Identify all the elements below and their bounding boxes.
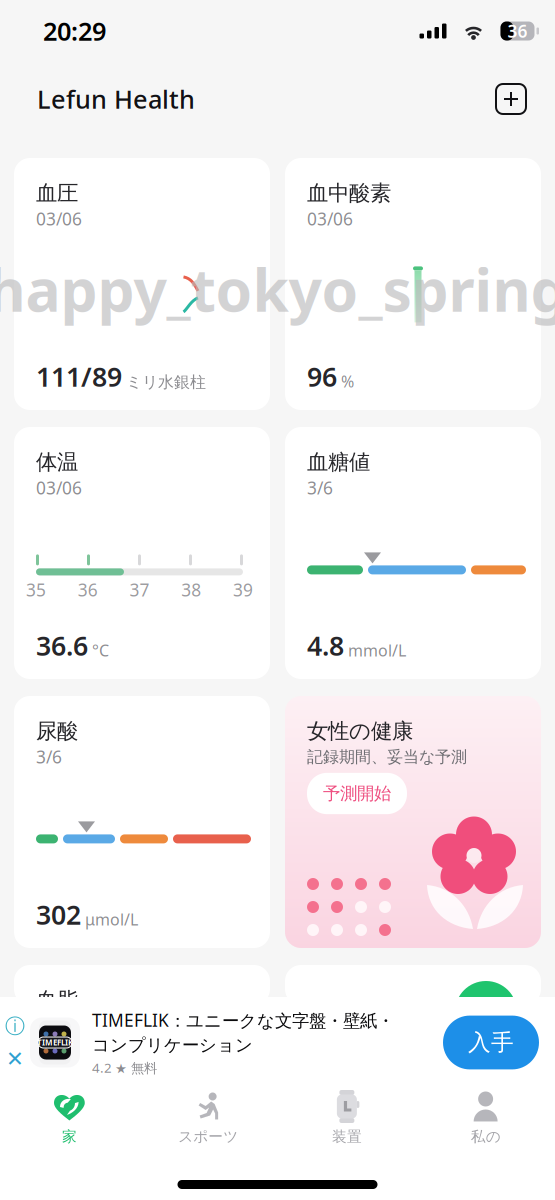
staticText: 4.8: [307, 628, 344, 663]
staticText: 36: [78, 578, 98, 601]
button[interactable]: 装置: [277, 1090, 416, 1157]
staticText: 03/06: [36, 207, 82, 230]
button[interactable]: 血中酸素: [285, 158, 541, 410]
staticText: ✕: [6, 1047, 24, 1071]
staticText: 36.6: [36, 628, 88, 663]
staticText: 38: [181, 578, 201, 601]
staticText: 装置: [332, 1127, 362, 1145]
staticText: 血圧: [36, 180, 78, 206]
staticText: 36: [507, 19, 527, 42]
staticText: ⓘ: [5, 1014, 25, 1039]
staticText: Lefun Health: [37, 82, 195, 116]
staticText: 家: [62, 1127, 77, 1145]
staticText: 03/06: [307, 207, 353, 230]
button[interactable]: スポーツ: [139, 1090, 278, 1157]
staticText: °C: [92, 640, 109, 661]
staticText: 111/89: [36, 359, 122, 394]
staticText: μmol/L: [85, 909, 138, 930]
button[interactable]: 入手: [443, 1016, 539, 1069]
staticText: 体温: [36, 449, 78, 475]
staticText: TIMEFLIK: [37, 1037, 73, 1048]
staticText: 35: [26, 578, 46, 601]
button[interactable]: 追加: [489, 77, 533, 121]
staticText: 尿酸: [36, 718, 78, 744]
staticText: 血脂: [36, 987, 78, 1013]
staticText: 96: [307, 359, 337, 394]
staticText: %: [341, 371, 354, 392]
staticText: 03/06: [36, 476, 82, 499]
staticText: 302: [36, 897, 81, 932]
staticText: 血糖値: [307, 449, 370, 475]
button[interactable]: 家: [0, 1090, 139, 1157]
staticText: 39: [233, 578, 253, 601]
staticText: 女性の健康: [307, 718, 413, 744]
staticText: TIMEFLIK：ユニークな文字盤・壁紙・: [92, 1008, 394, 1031]
staticText: 予測開始: [323, 783, 391, 804]
staticText: mmol/L: [348, 640, 406, 661]
staticText: happy_tokyo_spring: [0, 250, 555, 328]
staticText: 37: [129, 578, 149, 601]
staticText: 私の: [471, 1127, 501, 1145]
button[interactable]: 私の: [416, 1090, 555, 1157]
staticText: 3/6: [36, 745, 62, 768]
staticText: ミリ水銀柱: [126, 372, 206, 392]
staticText: 4.2 ★ 無料: [92, 1059, 157, 1076]
staticText: 3/6: [307, 476, 333, 499]
staticText: スポーツ: [178, 1127, 238, 1145]
staticText: 20:29: [43, 14, 106, 48]
button[interactable]: 尿酸: [14, 696, 270, 948]
staticText: 記録期間、妥当な予測: [307, 747, 467, 767]
staticText: コンプリケーション: [92, 1035, 253, 1056]
button[interactable]: 体温: [14, 427, 270, 679]
staticText: 入手: [468, 1029, 514, 1056]
button[interactable]: 女性の健康: [285, 696, 541, 948]
staticText: 血中酸素: [307, 180, 391, 206]
button[interactable]: 血糖値: [285, 427, 541, 679]
button[interactable]: 血圧: [14, 158, 270, 410]
